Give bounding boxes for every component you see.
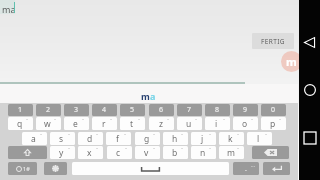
button[interactable]: 1#: [8, 162, 37, 175]
staticText: h: [172, 133, 178, 145]
button[interactable]: x: [78, 146, 103, 159]
staticText: g: [144, 133, 150, 145]
staticText: r: [102, 118, 106, 130]
staticText: ˝: [125, 147, 128, 154]
button[interactable]: e: [64, 117, 89, 130]
button[interactable]: r: [92, 117, 117, 130]
button[interactable]: 0: [261, 104, 286, 116]
button[interactable]: s: [50, 132, 75, 145]
button[interactable]: 9: [233, 104, 258, 116]
button[interactable]: 3: [64, 104, 89, 116]
staticText: w: [44, 118, 51, 130]
button[interactable]: n: [191, 146, 216, 159]
button[interactable]: m: [219, 146, 244, 159]
button[interactable]: 6: [149, 104, 174, 116]
staticText: ˝: [237, 133, 240, 140]
button[interactable]: [263, 162, 290, 175]
staticText: ˝: [153, 133, 156, 140]
staticText: f: [116, 133, 119, 145]
button[interactable]: Back: [299, 32, 320, 53]
button[interactable]: Home: [299, 79, 320, 100]
staticText: .: [245, 164, 247, 174]
button[interactable]: u: [177, 117, 202, 130]
button[interactable]: a: [22, 132, 47, 145]
button[interactable]: Account badge: [281, 51, 302, 72]
staticText: ˝: [54, 118, 57, 125]
staticText: ˝: [237, 147, 240, 154]
staticText: 9: [243, 105, 248, 115]
staticText: v: [144, 147, 149, 159]
staticText: i: [215, 118, 218, 130]
staticText: ˝: [153, 147, 156, 154]
button[interactable]: [72, 162, 229, 175]
staticText: ˝: [96, 133, 99, 140]
staticText: 0: [271, 105, 276, 115]
button[interactable]: 2: [36, 104, 61, 116]
button[interactable]: l: [247, 132, 272, 145]
button[interactable]: j: [191, 132, 216, 145]
button[interactable]: .: [233, 162, 259, 175]
staticText: ˝: [251, 118, 254, 125]
staticText: n: [200, 147, 206, 159]
button[interactable]: o: [233, 117, 258, 130]
staticText: 1#: [23, 165, 30, 172]
button[interactable]: h: [163, 132, 188, 145]
staticText: p: [270, 118, 276, 130]
button[interactable]: f: [106, 132, 131, 145]
staticText: d: [87, 133, 93, 145]
staticText: t: [130, 118, 134, 130]
button[interactable]: 7: [177, 104, 202, 116]
staticText: m: [286, 54, 297, 69]
staticText: ···: [251, 163, 256, 170]
staticText: y: [59, 147, 64, 159]
button[interactable]: 8: [205, 104, 230, 116]
staticText: ˝: [265, 133, 268, 140]
button[interactable]: m: [141, 90, 156, 102]
button[interactable]: w: [36, 117, 61, 130]
staticText: ˝: [82, 118, 85, 125]
staticText: l: [257, 133, 260, 145]
staticText: a: [31, 133, 36, 145]
button[interactable]: FERTIG: [252, 33, 294, 49]
staticText: ˝: [167, 118, 170, 125]
staticText: 4: [102, 105, 107, 115]
staticText: c: [116, 147, 121, 159]
button[interactable]: i: [205, 117, 230, 130]
button[interactable]: [8, 146, 47, 159]
staticText: m: [227, 147, 235, 159]
button[interactable]: 5: [120, 104, 145, 116]
button[interactable]: k: [219, 132, 244, 145]
staticText: 3: [74, 105, 79, 115]
button[interactable]: q: [8, 117, 33, 130]
staticText: ˝: [195, 118, 198, 125]
staticText: 5: [130, 105, 135, 115]
staticText: m: [141, 90, 150, 102]
staticText: z: [159, 118, 163, 130]
button[interactable]: Recents: [299, 127, 320, 148]
button[interactable]: y: [50, 146, 75, 159]
button[interactable]: d: [78, 132, 103, 145]
button[interactable]: 1: [8, 104, 33, 116]
staticText: q: [17, 118, 23, 130]
button[interactable]: c: [107, 146, 132, 159]
staticText: b: [172, 147, 178, 159]
staticText: ma: [2, 3, 16, 15]
staticText: s: [59, 133, 64, 145]
staticText: FERTIG: [261, 37, 285, 46]
button[interactable]: p: [261, 117, 286, 130]
staticText: ˝: [110, 118, 113, 125]
button[interactable]: z: [149, 117, 174, 130]
staticText: ˝: [124, 133, 127, 140]
button[interactable]: [44, 162, 67, 175]
button[interactable]: b: [163, 146, 188, 159]
staticText: ˝: [138, 118, 141, 125]
button[interactable]: t: [120, 117, 145, 130]
button[interactable]: 4: [92, 104, 117, 116]
staticText: j: [201, 133, 204, 145]
button[interactable]: g: [135, 132, 160, 145]
button[interactable]: [252, 146, 289, 159]
button[interactable]: v: [135, 146, 160, 159]
staticText: x: [87, 147, 92, 159]
staticText: ˝: [181, 133, 184, 140]
staticText: 2: [46, 105, 51, 115]
